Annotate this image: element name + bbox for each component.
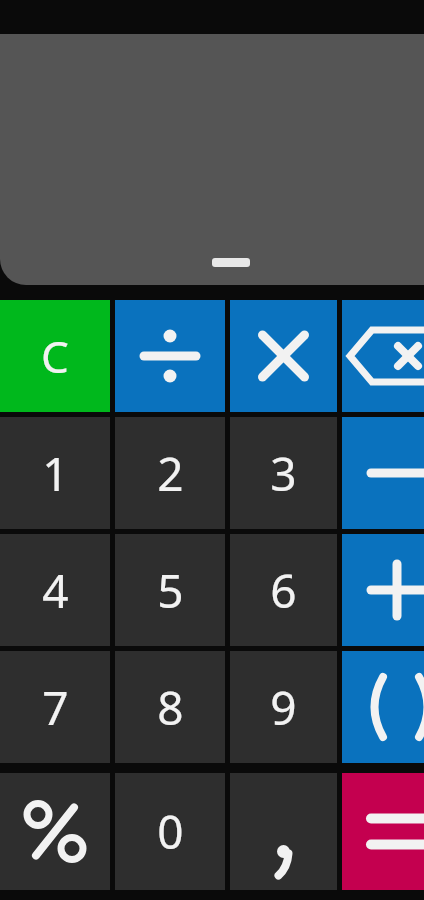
button[interactable]: Minus xyxy=(342,417,424,529)
staticText: 7 xyxy=(42,676,69,739)
staticText: 9 xyxy=(270,676,297,739)
staticText: 1 xyxy=(42,442,69,505)
button[interactable]: 5 xyxy=(115,534,225,646)
button[interactable]: 7 xyxy=(0,651,110,763)
staticText: 0 xyxy=(157,800,184,863)
button[interactable]: 2 xyxy=(115,417,225,529)
button[interactable]: 4 xyxy=(0,534,110,646)
button[interactable]: 8 xyxy=(115,651,225,763)
button[interactable]: Multiply xyxy=(230,300,337,412)
staticText: 3 xyxy=(270,442,297,505)
button[interactable]: Plus xyxy=(342,534,424,646)
button[interactable]: Percent xyxy=(0,773,110,890)
button[interactable]: 6 xyxy=(230,534,337,646)
staticText: C xyxy=(41,326,69,386)
button[interactable] xyxy=(0,34,424,285)
button[interactable]: 0 xyxy=(115,773,225,890)
button[interactable]: 1 xyxy=(0,417,110,529)
button[interactable]: C xyxy=(0,300,110,412)
staticText: 8 xyxy=(157,676,184,739)
staticText: 4 xyxy=(42,559,69,622)
button[interactable]: Comma xyxy=(230,773,337,890)
staticText: 2 xyxy=(157,442,184,505)
button[interactable]: 3 xyxy=(230,417,337,529)
staticText: 5 xyxy=(157,559,184,622)
button[interactable]: Equals xyxy=(342,773,424,890)
button[interactable]: Backspace xyxy=(342,300,424,412)
button[interactable]: Parentheses xyxy=(342,651,424,763)
staticText: 6 xyxy=(270,559,297,622)
button[interactable]: Divide xyxy=(115,300,225,412)
button[interactable]: 9 xyxy=(230,651,337,763)
